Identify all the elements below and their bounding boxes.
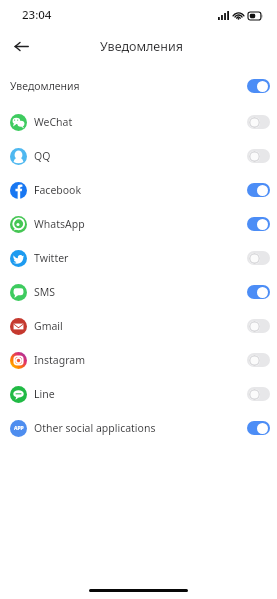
staticText: Instagram [34,353,86,367]
button[interactable]: Уведомления [0,69,277,103]
button[interactable]: Line [0,377,277,411]
staticText: APP [14,425,24,432]
button[interactable]: Instagram [0,343,277,377]
button[interactable]: APP [0,411,277,445]
staticText: Line [34,387,55,401]
button[interactable]: Disabled [247,149,270,163]
staticText: Other social applications [34,421,156,435]
staticText: Gmail [34,319,63,333]
staticText: SMS [34,285,56,299]
button[interactable]: WeChat [0,105,277,139]
button[interactable]: Disabled [247,319,270,333]
button[interactable]: Enabled [247,217,270,231]
staticText: Уведомления [100,38,183,55]
button[interactable]: Enabled [247,79,270,93]
button[interactable]: Back [8,33,34,59]
staticText: WeChat [34,115,73,129]
button[interactable]: Gmail [0,309,277,343]
button[interactable]: Enabled [247,285,270,299]
button[interactable]: Enabled [247,183,270,197]
button[interactable]: Disabled [247,387,270,401]
staticText: Twitter [34,251,69,265]
button[interactable]: SMS [0,275,277,309]
staticText: QQ [34,149,51,163]
button[interactable]: WhatsApp [0,207,277,241]
button[interactable]: Facebook [0,173,277,207]
button[interactable]: Disabled [247,251,270,265]
staticText: Facebook [34,183,82,197]
button[interactable]: Enabled [247,421,270,435]
staticText: Уведомления [10,79,80,93]
button[interactable]: Disabled [247,353,270,367]
button[interactable]: Disabled [247,115,270,129]
staticText: 23:04 [22,7,52,23]
button[interactable]: QQ [0,139,277,173]
button[interactable]: Twitter [0,241,277,275]
staticText: WhatsApp [34,217,85,231]
